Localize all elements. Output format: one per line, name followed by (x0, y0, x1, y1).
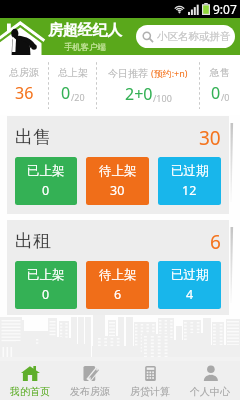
button[interactable]: 房贷计算 (120, 361, 180, 400)
staticText: 总房源 (9, 66, 39, 79)
staticText: 2+0 (125, 83, 153, 105)
staticText: 已上架 (27, 163, 65, 179)
staticText: 12 (182, 182, 197, 199)
staticText: 0 (61, 82, 71, 104)
button[interactable]: 个人中心 (180, 361, 240, 400)
button[interactable]: 总房源 (0, 55, 48, 115)
button[interactable]: 已上架 (15, 157, 77, 205)
staticText: (预约:+n) (151, 67, 188, 79)
button[interactable]: 今日推荐 (97, 55, 199, 115)
staticText: /0 (221, 91, 230, 103)
staticText: 0 (211, 82, 221, 104)
staticText: 发布房源 (70, 385, 110, 398)
button[interactable]: 发布房源 (60, 361, 120, 400)
staticText: 总上架 (58, 66, 88, 79)
staticText: 急售 (210, 66, 230, 79)
button[interactable]: 已过期 (158, 157, 221, 205)
button[interactable]: 待上架 (86, 261, 149, 309)
staticText: 今日推荐 (108, 66, 151, 80)
staticText: 0 (42, 182, 50, 199)
staticText: /20 (71, 91, 85, 103)
button[interactable]: 总上架 (49, 55, 96, 115)
button[interactable]: 急售 (200, 55, 240, 115)
staticText: 已上架 (27, 267, 65, 283)
button[interactable]: 小区名称或拼音 (136, 25, 235, 48)
staticText: /100 (153, 92, 172, 104)
staticText: 房超经纪人 (48, 21, 122, 40)
staticText: 36 (15, 82, 34, 104)
staticText: 待上架 (99, 163, 137, 179)
staticText: 出租 (15, 230, 51, 253)
staticText: 已过期 (171, 267, 209, 283)
button[interactable]: 已上架 (15, 261, 77, 309)
staticText: 30 (199, 125, 221, 151)
staticText: 0 (42, 286, 50, 303)
button[interactable]: 待上架 (86, 157, 149, 205)
staticText: 出售 (15, 126, 51, 149)
staticText: 已过期 (171, 163, 209, 179)
button[interactable]: 我的首页 (0, 361, 60, 400)
staticText: 9:07 (213, 1, 237, 17)
staticText: 小区名称或拼音 (157, 30, 231, 43)
staticText: 6 (210, 229, 221, 255)
staticText: 房贷计算 (130, 385, 170, 398)
staticText: 30 (110, 182, 125, 199)
staticText: 待上架 (99, 267, 137, 283)
staticText: 我的首页 (10, 385, 50, 398)
staticText: 手机客户端 (64, 42, 106, 53)
staticText: 6 (114, 286, 122, 303)
staticText: 个人中心 (190, 385, 230, 398)
button[interactable]: 已过期 (158, 261, 221, 309)
staticText: 4 (186, 286, 194, 303)
